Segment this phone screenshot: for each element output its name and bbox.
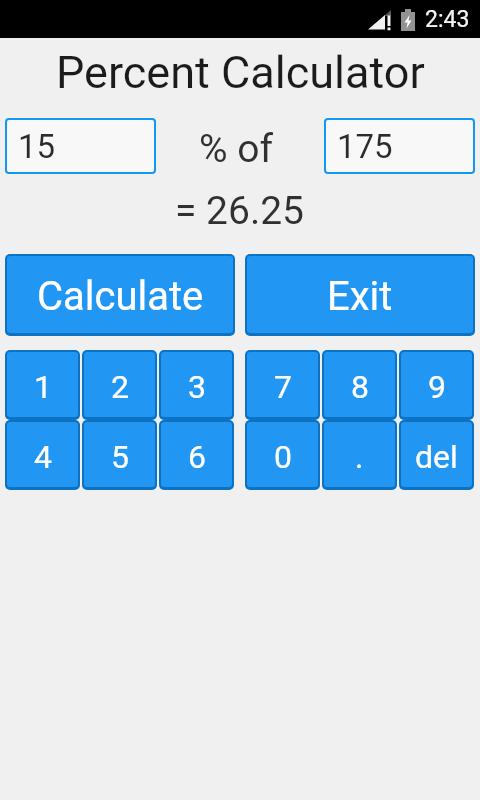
- button[interactable]: 6: [159, 420, 234, 490]
- button[interactable]: 2: [82, 350, 157, 420]
- button[interactable]: del: [399, 420, 474, 490]
- button[interactable]: 3: [159, 350, 234, 420]
- button[interactable]: 4: [5, 420, 80, 490]
- staticText: Percent Calculator: [56, 46, 425, 99]
- staticText: = 26.25: [175, 188, 305, 232]
- button[interactable]: 8: [322, 350, 397, 420]
- staticText: 9: [428, 368, 446, 406]
- button[interactable]: 9: [399, 350, 474, 420]
- staticText: 6: [188, 438, 206, 476]
- staticText: 175: [337, 127, 393, 166]
- button[interactable]: 7: [245, 350, 320, 420]
- staticText: 8: [351, 368, 369, 406]
- staticText: % of: [199, 126, 274, 172]
- staticText: del: [415, 438, 458, 476]
- button[interactable]: 15: [5, 118, 156, 174]
- button[interactable]: 0: [245, 420, 320, 490]
- button[interactable]: 1: [5, 350, 80, 420]
- button[interactable]: .: [322, 420, 397, 490]
- staticText: Exit: [327, 273, 393, 320]
- staticText: 1: [34, 368, 52, 406]
- staticText: 5: [111, 438, 129, 476]
- staticText: 0: [274, 438, 292, 476]
- button[interactable]: 175: [324, 118, 475, 174]
- button[interactable]: Calculate: [5, 254, 235, 336]
- button[interactable]: 5: [82, 420, 157, 490]
- staticText: Calculate: [37, 273, 204, 320]
- staticText: 2:43: [425, 6, 470, 33]
- staticText: .: [355, 438, 364, 476]
- staticText: 2: [111, 368, 129, 406]
- staticText: 4: [34, 438, 52, 476]
- staticText: 15: [18, 127, 56, 166]
- staticText: 3: [188, 368, 206, 406]
- button[interactable]: Exit: [245, 254, 475, 336]
- staticText: 7: [274, 368, 292, 406]
